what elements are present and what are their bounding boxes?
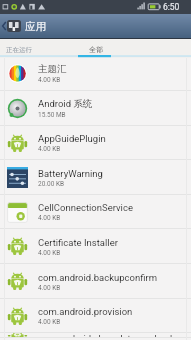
button[interactable]: Certificate Installer <box>0 229 191 264</box>
staticText: 4.00 KB <box>38 249 61 257</box>
staticText: AppGuidePlugin <box>38 133 106 144</box>
button[interactable]: AppGuidePlugin <box>0 126 191 160</box>
staticText: 6:50 <box>163 2 180 12</box>
button[interactable]: com.android.sharedstoragebackup <box>0 333 191 338</box>
button[interactable]: CellConnectionService <box>0 195 191 229</box>
staticText: Android 系统 <box>38 98 93 110</box>
staticText: 4.00 KB <box>38 76 61 84</box>
button[interactable]: 主题汇 <box>0 56 191 91</box>
staticText: CellConnectionService <box>38 202 133 213</box>
staticText: 应用 <box>25 20 46 33</box>
button[interactable]: Back to Apps <box>0 14 191 38</box>
staticText: com.android.sharedstoragebackup <box>38 333 186 338</box>
button[interactable]: BatteryWarning <box>0 160 191 195</box>
button[interactable]: com.android.provision <box>0 299 191 333</box>
staticText: 4.00 KB <box>38 145 61 153</box>
button[interactable]: 正在运行 <box>0 44 38 56</box>
button[interactable]: 全部 <box>75 43 117 56</box>
button[interactable]: Android 系统 <box>0 91 191 126</box>
staticText: Certificate Installer <box>38 237 118 248</box>
button[interactable]: com.android.backupconfirm <box>0 264 191 299</box>
staticText: 4.00 KB <box>38 284 61 292</box>
staticText: 15.50 MB <box>38 111 66 119</box>
staticText: com.android.provision <box>38 306 133 317</box>
staticText: 20.00 KB <box>38 180 65 188</box>
staticText: 主题汇 <box>38 63 67 75</box>
staticText: 4.00 KB <box>38 318 61 326</box>
staticText: BatteryWarning <box>38 168 103 179</box>
staticText: 4.00 KB <box>38 214 61 222</box>
staticText: com.android.backupconfirm <box>38 272 158 283</box>
